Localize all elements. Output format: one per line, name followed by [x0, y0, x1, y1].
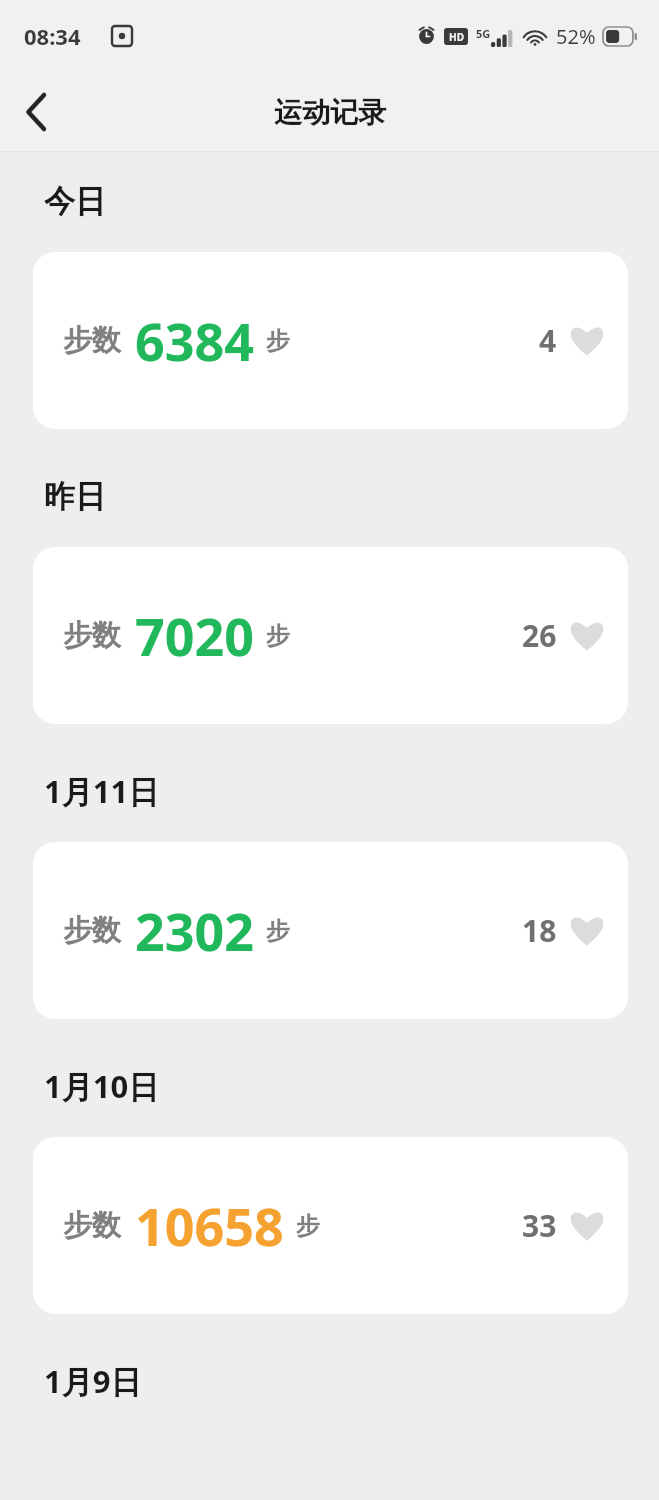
staticText: 6384: [135, 305, 254, 376]
staticText: 步: [266, 326, 290, 356]
staticText: 4: [539, 320, 557, 361]
staticText: 步数: [63, 617, 121, 654]
button[interactable]: 步数: [33, 252, 628, 429]
staticText: 26: [522, 615, 557, 656]
staticText: 今日: [44, 182, 106, 221]
staticText: 10658: [135, 1190, 284, 1261]
button[interactable]: 步数: [33, 547, 628, 724]
button[interactable]: 步数: [33, 1137, 628, 1314]
staticText: 1月11日: [44, 770, 160, 812]
staticText: 步: [266, 916, 290, 946]
staticText: 7020: [135, 600, 254, 671]
staticText: 运动记录: [274, 95, 386, 130]
staticText: 昨日: [44, 477, 106, 516]
staticText: 1月9日: [44, 1360, 142, 1402]
staticText: 18: [522, 910, 557, 951]
staticText: 步数: [63, 322, 121, 359]
staticText: 33: [522, 1205, 557, 1246]
staticText: 5G: [476, 26, 491, 41]
staticText: 2302: [135, 895, 254, 966]
staticText: 08:34: [24, 21, 81, 51]
staticText: 步: [296, 1211, 320, 1241]
button[interactable]: Back: [0, 76, 72, 148]
staticText: 步数: [63, 1207, 121, 1244]
staticText: 52%: [556, 23, 596, 50]
staticText: 步: [266, 621, 290, 651]
button[interactable]: 步数: [33, 842, 628, 1019]
staticText: 1月10日: [44, 1065, 160, 1107]
staticText: 步数: [63, 912, 121, 949]
staticText: HD: [449, 30, 464, 44]
